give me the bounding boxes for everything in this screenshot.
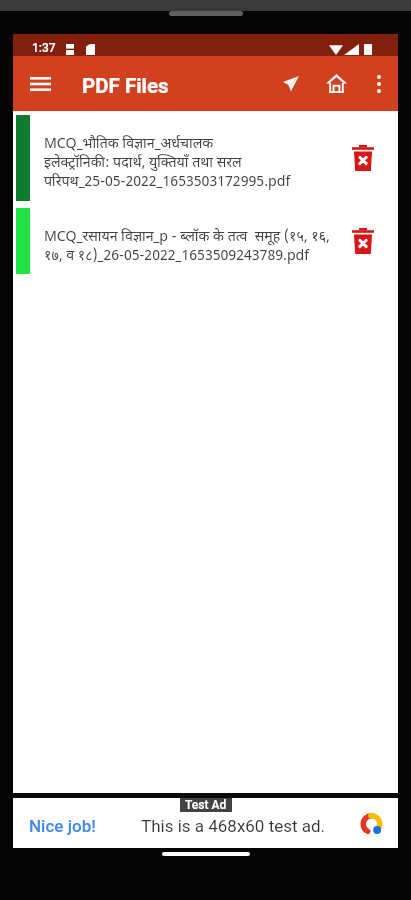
button[interactable]: Nice job! bbox=[29, 816, 96, 836]
staticText: 1:37 bbox=[32, 41, 56, 55]
button[interactable]: Delete bbox=[336, 204, 389, 277]
staticText: MCQ_रसायन विज्ञान_p - ब्लॉक के तत्व समूह… bbox=[44, 228, 330, 247]
button[interactable]: Send bbox=[269, 56, 313, 111]
button[interactable]: Home bbox=[313, 56, 359, 111]
button[interactable]: MCQ_भौतिक विज्ञान_अर्धचालक bbox=[13, 111, 398, 204]
staticText: परिपथ_25-05-2022_1653503172995.pdf bbox=[44, 173, 291, 192]
button[interactable]: MCQ_रसायन विज्ञान_p - ब्लॉक के तत्व समूह… bbox=[13, 204, 398, 277]
staticText: MCQ_भौतिक विज्ञान_अर्धचालक bbox=[44, 135, 214, 154]
staticText: Test Ad bbox=[185, 798, 227, 812]
button[interactable]: Ad choices bbox=[359, 813, 384, 838]
button[interactable]: Open navigation drawer bbox=[13, 56, 67, 111]
button[interactable]: More options bbox=[359, 56, 398, 111]
staticText: PDF Files bbox=[82, 74, 169, 98]
button[interactable]: Delete bbox=[336, 111, 389, 204]
button[interactable]: This is a 468x60 test ad. bbox=[141, 816, 326, 836]
staticText: १७, व १८)_26-05-2022_1653509243789.pdf bbox=[44, 247, 310, 266]
staticText: इलेक्ट्रॉनिकी: पदार्थ, युक्तियाँ तथा सरल bbox=[44, 154, 242, 173]
